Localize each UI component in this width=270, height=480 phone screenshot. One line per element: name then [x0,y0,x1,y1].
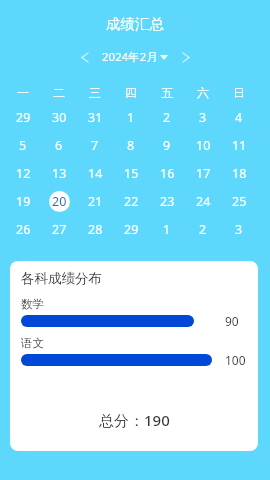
button[interactable]: 25 [221,187,257,215]
staticText: 成绩汇总 [106,15,164,33]
staticText: 6 [55,137,63,154]
staticText: 五 [161,85,173,100]
staticText: 90 [225,313,239,329]
button[interactable]: 8 [113,131,149,159]
button[interactable]: 11 [221,131,257,159]
button[interactable]: 20 [41,187,77,215]
staticText: 7 [91,137,99,154]
button[interactable]: 5 [5,131,41,159]
button[interactable]: 22 [113,187,149,215]
staticText: 二 [53,85,65,100]
button[interactable]: 28 [77,215,113,243]
staticText: 22 [124,193,139,210]
staticText: 3 [199,109,207,126]
button[interactable]: 16 [149,159,185,187]
button[interactable]: 13 [41,159,77,187]
staticText: 一 [17,85,29,100]
button[interactable]: 12 [5,159,41,187]
staticText: 17 [196,165,211,182]
staticText: 各科成绩分布 [21,270,102,287]
button[interactable]: 21 [77,187,113,215]
button[interactable]: 30 [41,103,77,131]
button[interactable]: 27 [41,215,77,243]
button[interactable]: Next month [175,46,197,68]
button[interactable]: 10 [185,131,221,159]
staticText: 25 [232,193,247,210]
staticText: 六 [197,85,209,100]
staticText: 28 [88,221,103,238]
staticText: 2 [199,221,207,238]
button[interactable]: 29 [5,103,41,131]
button[interactable]: Previous month [74,46,96,68]
button[interactable]: 26 [5,215,41,243]
staticText: 2 [163,109,171,126]
staticText: 19 [16,193,31,210]
staticText: 日 [233,85,245,100]
button[interactable]: 24 [185,187,221,215]
button[interactable]: 23 [149,187,185,215]
staticText: 15 [124,165,139,182]
staticText: 30 [52,109,67,126]
button[interactable]: 4 [221,103,257,131]
staticText: 数学 [21,297,44,311]
staticText: 8 [127,137,135,154]
staticText: 10 [196,137,211,154]
staticText: 语文 [21,336,44,350]
button[interactable]: 3 [185,103,221,131]
staticText: 总分：190 [99,410,170,430]
staticText: 13 [52,165,67,182]
staticText: 27 [52,221,67,238]
button[interactable]: 1 [113,103,149,131]
staticText: 100 [225,352,246,368]
staticText: 12 [16,165,31,182]
staticText: 四 [125,85,137,100]
button[interactable]: 31 [77,103,113,131]
button[interactable]: 2024年2月 [102,49,168,65]
button[interactable]: 7 [77,131,113,159]
button[interactable]: 3 [221,215,257,243]
button[interactable]: 6 [41,131,77,159]
staticText: 29 [124,221,139,238]
staticText: 3 [235,221,243,238]
staticText: 21 [88,193,103,210]
button[interactable]: 17 [185,159,221,187]
button[interactable]: 19 [5,187,41,215]
button[interactable]: 14 [77,159,113,187]
staticText: 18 [232,165,247,182]
staticText: 9 [163,137,171,154]
button[interactable]: 2 [185,215,221,243]
staticText: 20 [52,193,67,210]
button[interactable]: 18 [221,159,257,187]
staticText: 三 [89,85,101,100]
button[interactable]: 29 [113,215,149,243]
staticText: 16 [160,165,175,182]
button[interactable]: 2 [149,103,185,131]
staticText: 23 [160,193,175,210]
staticText: 1 [127,109,135,126]
staticText: 5 [19,137,27,154]
staticText: 4 [235,109,243,126]
staticText: 11 [232,137,247,154]
staticText: 1 [163,221,171,238]
staticText: 26 [16,221,31,238]
staticText: 2024年2月 [102,49,158,65]
staticText: 29 [16,109,31,126]
staticText: 14 [88,165,103,182]
staticText: 24 [196,193,211,210]
button[interactable]: 15 [113,159,149,187]
staticText: 31 [88,109,103,126]
button[interactable]: 9 [149,131,185,159]
button[interactable]: 1 [149,215,185,243]
